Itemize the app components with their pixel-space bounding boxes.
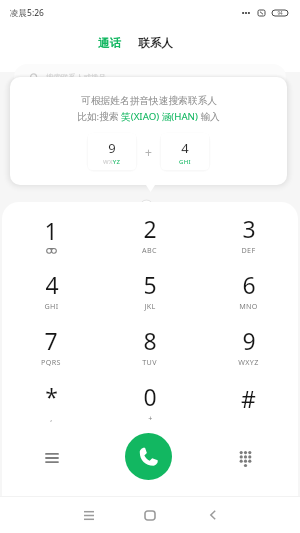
button[interactable]: 2 bbox=[100, 207, 199, 263]
button[interactable]: Home bbox=[130, 498, 170, 532]
button[interactable]: 7 bbox=[2, 319, 100, 375]
staticText: 可根据姓名拼音快速搜索联系人 bbox=[81, 95, 217, 107]
staticText: GHI bbox=[179, 158, 191, 166]
button[interactable]: # bbox=[199, 375, 298, 431]
staticText: MNO bbox=[239, 301, 258, 311]
staticText: PQRS bbox=[41, 357, 61, 367]
button[interactable]: 联系人 bbox=[130, 33, 181, 53]
staticText: * bbox=[45, 381, 58, 412]
staticText: , bbox=[50, 413, 53, 423]
staticText: 8 bbox=[143, 325, 157, 356]
staticText: 比如:搜索 笑(XIAO) 涵(HAN) 输入 bbox=[77, 110, 220, 123]
staticText: 搜索联系人或拨号 bbox=[46, 73, 106, 82]
button[interactable]: 0 bbox=[100, 375, 199, 431]
staticText: 7 bbox=[44, 325, 58, 356]
staticText: + bbox=[145, 144, 152, 160]
button[interactable]: Back bbox=[193, 498, 233, 532]
button[interactable]: * bbox=[2, 375, 100, 431]
button[interactable]: 5 bbox=[100, 263, 199, 319]
button[interactable]: Dialpad bbox=[223, 435, 268, 480]
staticText: + bbox=[148, 413, 153, 423]
button[interactable]: 1 bbox=[2, 207, 100, 263]
staticText: 6 bbox=[242, 269, 256, 300]
button[interactable]: 6 bbox=[199, 263, 298, 319]
staticText: # bbox=[241, 383, 256, 414]
staticText: 9 bbox=[242, 325, 256, 356]
button[interactable]: 9 bbox=[199, 319, 298, 375]
button[interactable]: Call bbox=[125, 433, 172, 480]
staticText: 1 bbox=[44, 215, 58, 246]
staticText: WXYZ bbox=[103, 158, 121, 166]
button[interactable]: 9 bbox=[88, 133, 136, 170]
button[interactable]: 通话 bbox=[90, 33, 129, 53]
staticText: TUV bbox=[142, 357, 157, 367]
staticText: 3 bbox=[242, 213, 256, 244]
button[interactable]: 4 bbox=[2, 263, 100, 319]
staticText: GHI bbox=[44, 301, 59, 311]
staticText: 0 bbox=[143, 381, 157, 412]
staticText: 联系人 bbox=[138, 36, 173, 50]
staticText: JKL bbox=[144, 301, 156, 311]
staticText: ABC bbox=[142, 245, 157, 255]
staticText: 5 bbox=[143, 269, 157, 300]
staticText: 4 bbox=[45, 269, 59, 300]
button[interactable]: 4 bbox=[161, 133, 209, 170]
staticText: 4 bbox=[181, 139, 189, 157]
staticText: 2 bbox=[143, 213, 157, 244]
button[interactable]: 8 bbox=[100, 319, 199, 375]
button[interactable]: 3 bbox=[199, 207, 298, 263]
staticText: WXYZ bbox=[238, 357, 259, 367]
staticText: 94 bbox=[277, 10, 283, 16]
button[interactable]: Call log bbox=[29, 435, 74, 480]
staticText: DEF bbox=[241, 245, 256, 255]
staticText: 凌晨5:26 bbox=[10, 7, 44, 19]
button[interactable]: Search bbox=[14, 64, 286, 90]
staticText: 通话 bbox=[98, 36, 121, 50]
staticText: 9 bbox=[108, 139, 116, 157]
button[interactable]: Recents bbox=[69, 498, 109, 532]
